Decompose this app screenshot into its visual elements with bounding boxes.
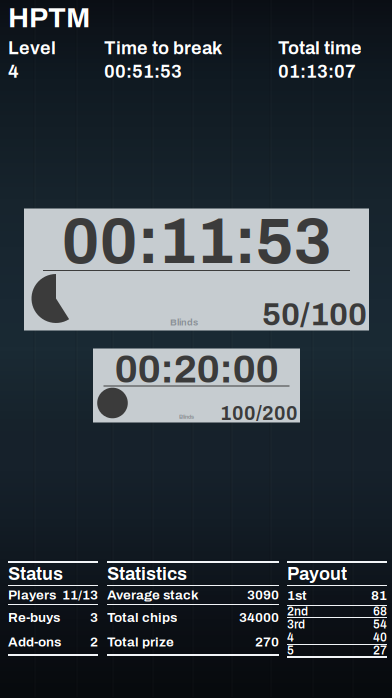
staticText: 68 xyxy=(373,605,387,618)
staticText: 4 xyxy=(8,62,19,82)
staticText: Total prize xyxy=(107,635,174,649)
staticText: 50/100 xyxy=(262,297,367,332)
button[interactable]: 00:11:53 xyxy=(24,208,369,330)
staticText: 00:20:00 xyxy=(114,348,278,391)
staticText: Total chips xyxy=(107,610,177,625)
staticText: Level xyxy=(8,38,56,58)
staticText: 3rd xyxy=(287,618,305,631)
staticText: 27 xyxy=(373,644,387,657)
staticText: 00:11:53 xyxy=(61,207,331,276)
staticText: Average stack xyxy=(107,588,199,602)
staticText: Blinds xyxy=(179,414,194,420)
staticText: 40 xyxy=(373,631,387,644)
staticText: Status xyxy=(8,564,63,584)
staticText: 00:51:53 xyxy=(104,62,182,82)
staticText: 54 xyxy=(373,618,387,631)
staticText: 100/200 xyxy=(220,403,298,424)
staticText: 2nd xyxy=(287,605,308,618)
staticText: 3 xyxy=(90,610,98,625)
staticText: 1st xyxy=(287,588,307,603)
staticText: HPTM xyxy=(8,3,90,33)
staticText: 2 xyxy=(90,635,98,649)
staticText: Time to break xyxy=(104,38,222,58)
staticText: 34000 xyxy=(239,610,279,625)
staticText: 270 xyxy=(255,635,279,649)
staticText: 5 xyxy=(287,644,294,657)
staticText: Re-buys xyxy=(8,610,60,625)
staticText: 81 xyxy=(371,588,387,603)
staticText: Blinds xyxy=(170,317,198,328)
staticText: Payout xyxy=(287,564,347,584)
staticText: Add-ons xyxy=(8,635,61,649)
staticText: 4 xyxy=(287,631,294,644)
staticText: 11/13 xyxy=(62,588,98,602)
button[interactable]: 00:20:00 xyxy=(93,348,300,422)
staticText: Statistics xyxy=(107,564,187,584)
staticText: 3090 xyxy=(247,588,279,602)
staticText: 01:13:07 xyxy=(278,62,356,82)
staticText: Total time xyxy=(278,38,362,58)
staticText: Players xyxy=(8,588,56,602)
